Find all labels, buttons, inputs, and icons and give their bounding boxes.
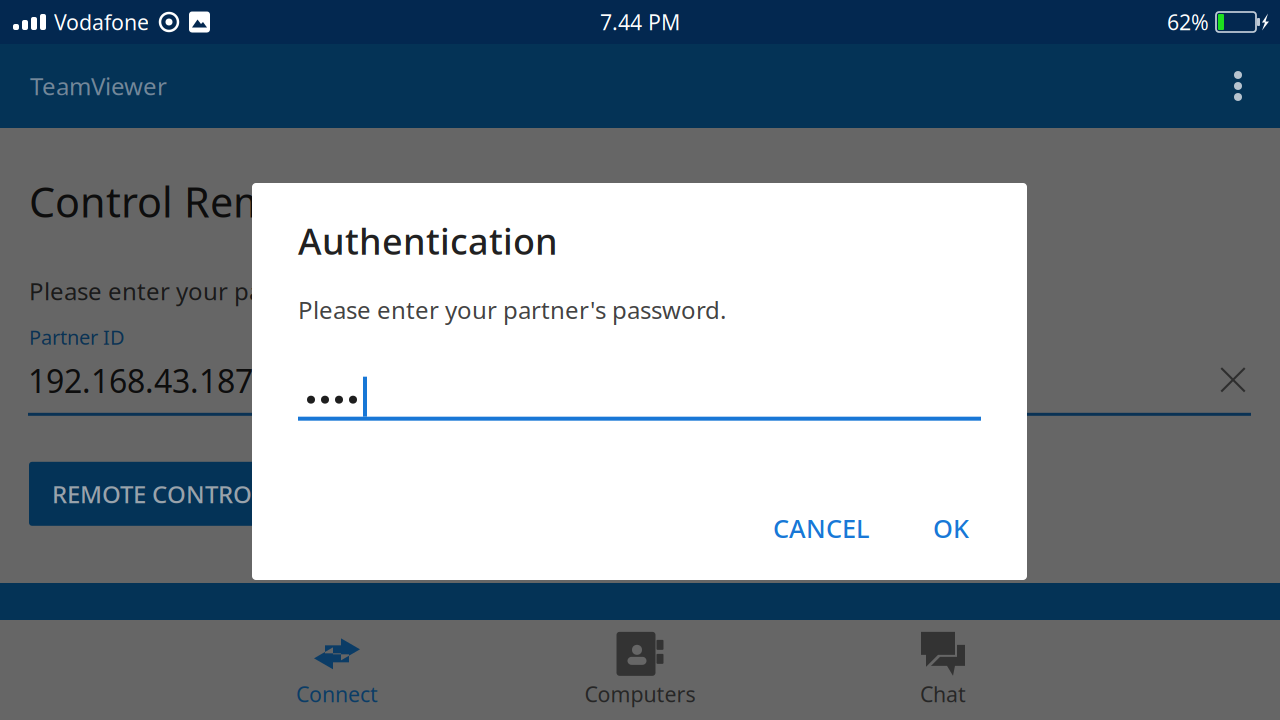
staticText: Control Remote Computer bbox=[29, 174, 542, 229]
staticText: Authentication bbox=[298, 217, 558, 265]
staticText: 62% bbox=[1167, 8, 1209, 36]
staticText: OK bbox=[933, 511, 969, 545]
button[interactable]: More options bbox=[1208, 44, 1268, 128]
button[interactable]: OK bbox=[917, 498, 985, 558]
staticText: Vodafone bbox=[54, 8, 149, 36]
staticText: Computers bbox=[584, 680, 695, 708]
staticText: 7.44 PM bbox=[600, 8, 680, 36]
button[interactable]: CANCEL bbox=[757, 498, 886, 558]
staticText: Connect bbox=[296, 680, 378, 708]
staticText: Please enter your partner ID. bbox=[29, 275, 357, 307]
staticText: Chat bbox=[920, 680, 966, 708]
staticText: Partner ID bbox=[29, 324, 125, 350]
button[interactable]: Computers bbox=[488, 620, 791, 720]
button[interactable]: Connect bbox=[185, 620, 488, 720]
staticText: 192.168.43.187 bbox=[28, 359, 253, 402]
staticText: CANCEL bbox=[773, 511, 870, 545]
button[interactable]: REMOTE CONTROL bbox=[29, 462, 549, 526]
staticText: REMOTE CONTROL bbox=[52, 478, 265, 510]
button[interactable]: Chat bbox=[791, 620, 1094, 720]
button[interactable]: Clear partner ID bbox=[1213, 360, 1253, 400]
staticText: TeamViewer bbox=[30, 70, 167, 102]
staticText: Please enter your partner's password. bbox=[298, 294, 726, 326]
